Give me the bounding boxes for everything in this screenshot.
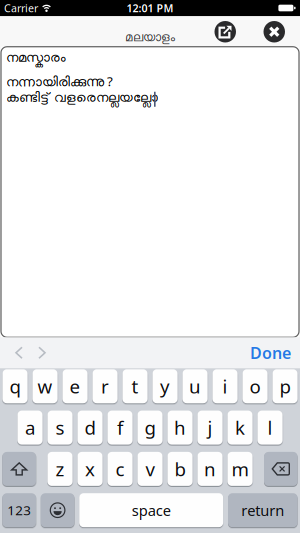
staticText: f	[117, 415, 123, 440]
button[interactable]: f	[107, 411, 133, 445]
button[interactable]: e	[62, 369, 88, 403]
button[interactable]: Share	[214, 21, 236, 42]
staticText: g	[144, 415, 155, 440]
button[interactable]: Done	[250, 342, 291, 363]
button[interactable]: s	[47, 411, 73, 445]
staticText: e	[69, 374, 80, 399]
staticText: Done	[250, 342, 291, 363]
button[interactable]: Shift	[2, 452, 36, 486]
button[interactable]: a	[17, 411, 43, 445]
staticText: k	[235, 415, 245, 440]
staticText: t	[131, 374, 138, 399]
staticText: n	[204, 456, 216, 481]
button[interactable]: h	[167, 411, 193, 445]
button[interactable]: w	[32, 369, 58, 403]
staticText: നമസ്കാരം	[6, 51, 66, 64]
button[interactable]: x	[77, 452, 103, 486]
button[interactable]: Previous	[14, 346, 23, 359]
button[interactable]: r	[92, 369, 118, 403]
staticText: j	[207, 415, 212, 440]
button[interactable]: b	[167, 452, 193, 486]
staticText: u	[189, 374, 201, 399]
button[interactable]: Close	[263, 21, 285, 42]
button[interactable]: p	[272, 369, 298, 403]
staticText: i	[222, 374, 227, 399]
staticText: l	[267, 415, 272, 440]
button[interactable]: Delete	[264, 452, 298, 486]
staticText: o	[249, 374, 260, 399]
button[interactable]: n	[197, 452, 223, 486]
staticText: return	[241, 500, 284, 520]
staticText: b	[174, 456, 185, 481]
button[interactable]: m	[227, 452, 253, 486]
staticText: space	[132, 500, 171, 520]
staticText: 12:01 PM	[126, 1, 173, 15]
staticText: Carrier	[4, 1, 38, 15]
button[interactable]: Emoji	[41, 493, 74, 527]
button[interactable]: t	[122, 369, 148, 403]
button[interactable]: i	[212, 369, 238, 403]
staticText: x	[85, 456, 95, 481]
button[interactable]: l	[257, 411, 283, 445]
staticText: d	[84, 415, 95, 440]
staticText: നന്നായിരിക്കുന്നു ?	[6, 72, 113, 90]
staticText: p	[279, 374, 290, 399]
button[interactable]: g	[137, 411, 163, 445]
staticText: a	[25, 415, 35, 440]
button[interactable]: return	[228, 493, 298, 527]
staticText: r	[101, 374, 109, 399]
staticText: y	[160, 374, 170, 399]
staticText: 123	[7, 501, 31, 519]
button[interactable]: v	[137, 452, 163, 486]
staticText: h	[174, 415, 186, 440]
staticText: z	[55, 456, 64, 481]
button[interactable]: k	[227, 411, 253, 445]
button[interactable]: 123	[2, 493, 36, 527]
button[interactable]: o	[242, 369, 268, 403]
staticText: m	[231, 456, 248, 481]
button[interactable]: c	[107, 452, 133, 486]
staticText: കണ്ടിട്ട് വളരെനല്ലയല്ലോ	[6, 91, 158, 104]
staticText: q	[9, 374, 20, 399]
button[interactable]: space	[79, 493, 223, 527]
button[interactable]: d	[77, 411, 103, 445]
staticText: മലയാളം	[125, 32, 175, 44]
staticText: s	[55, 415, 64, 440]
button[interactable]: y	[152, 369, 178, 403]
staticText: v	[145, 456, 154, 481]
button[interactable]: Next	[37, 346, 46, 359]
button[interactable]: z	[47, 452, 73, 486]
button[interactable]: q	[2, 369, 28, 403]
staticText: c	[115, 456, 124, 481]
button[interactable]: j	[197, 411, 223, 445]
staticText: w	[37, 374, 52, 399]
button[interactable]: u	[182, 369, 208, 403]
